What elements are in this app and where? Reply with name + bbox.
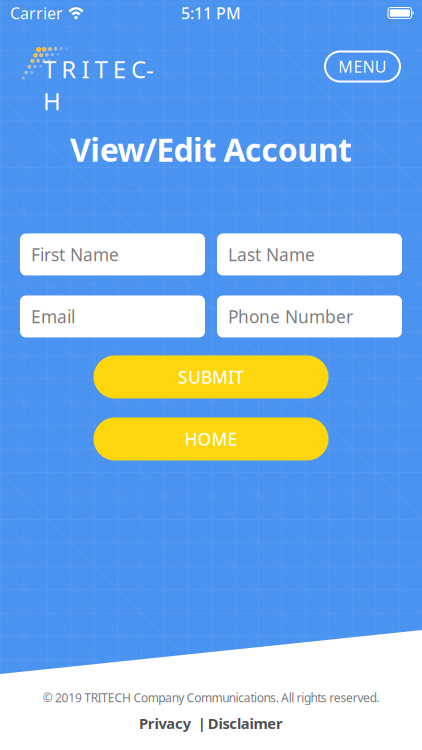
staticText: Email <box>31 305 75 328</box>
button[interactable]: HOME <box>93 417 328 460</box>
staticText: TRITECH <box>43 53 169 85</box>
staticText: View/Edit Account <box>70 128 352 170</box>
staticText: | <box>198 713 206 733</box>
button[interactable]: MENU <box>325 51 400 81</box>
button[interactable]: Privacy <box>139 713 191 733</box>
staticText: Carrier <box>10 2 63 24</box>
button[interactable]: First Name <box>20 233 205 275</box>
staticText: MENU <box>338 56 387 77</box>
staticText: First Name <box>31 243 119 266</box>
staticText: SUBMIT <box>178 365 244 388</box>
button[interactable]: Last Name <box>217 233 402 275</box>
button[interactable]: Disclaimer <box>208 713 283 733</box>
button[interactable]: SUBMIT <box>93 355 328 398</box>
button[interactable]: Phone Number <box>217 295 402 337</box>
staticText: Phone Number <box>228 305 353 328</box>
staticText: Privacy <box>139 713 191 733</box>
staticText: Disclaimer <box>208 713 283 733</box>
staticText: Last Name <box>228 243 315 266</box>
staticText: HOME <box>184 427 237 450</box>
button[interactable]: Email <box>20 295 205 337</box>
staticText: 5:11 PM <box>181 2 241 24</box>
staticText: © 2019 TRITECH Company Communications. A… <box>43 690 379 705</box>
